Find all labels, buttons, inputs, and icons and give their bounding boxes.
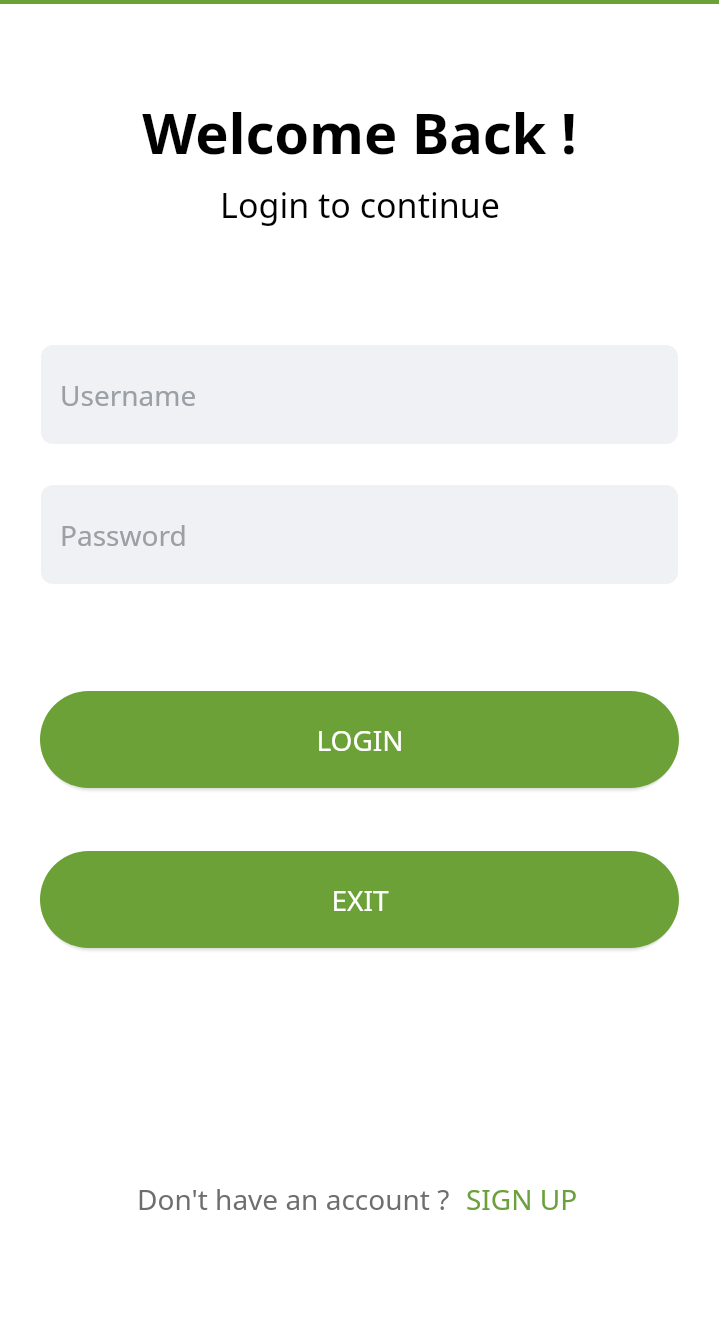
staticText: Welcome Back !	[142, 94, 577, 170]
staticText: Username	[60, 376, 197, 414]
button[interactable]: Password	[41, 485, 678, 584]
staticText: SIGN UP	[466, 1180, 578, 1218]
button[interactable]: Username	[41, 345, 678, 444]
staticText: Password	[60, 516, 187, 554]
button[interactable]: SIGN UP	[450, 1174, 582, 1224]
staticText: EXIT	[331, 881, 389, 919]
button[interactable]: LOGIN	[40, 691, 679, 788]
button[interactable]: EXIT	[40, 851, 679, 948]
staticText: LOGIN	[316, 721, 404, 759]
staticText: Login to continue	[220, 182, 500, 228]
staticText: Don't have an account ?	[137, 1180, 450, 1218]
